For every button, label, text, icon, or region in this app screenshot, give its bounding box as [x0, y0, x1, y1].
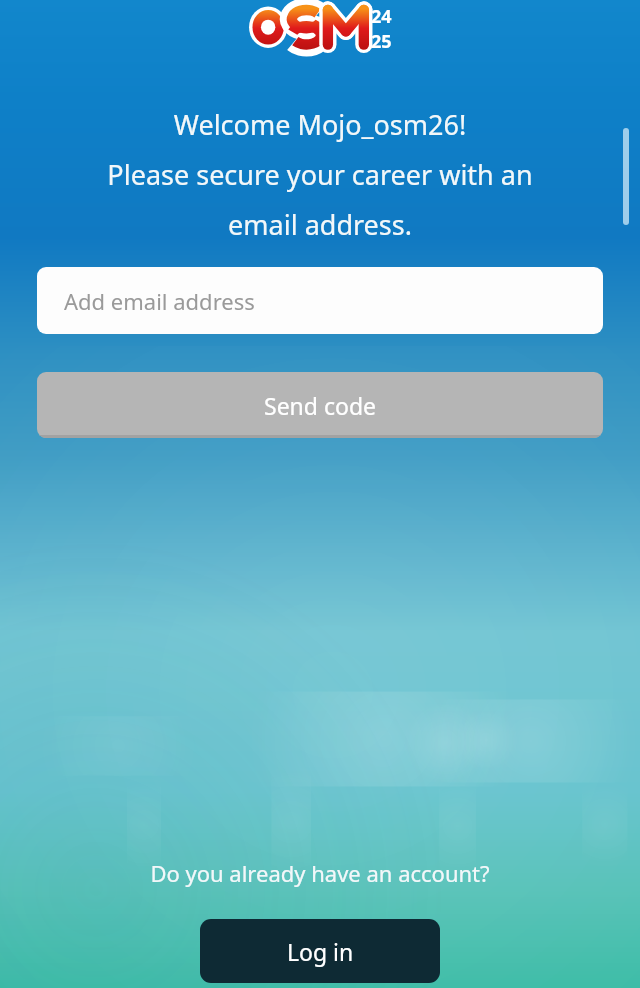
staticText: Welcome Mojo_osm26! Please secure your c…: [22, 106, 618, 243]
staticText: Send code: [264, 390, 377, 421]
button[interactable]: Send code: [37, 372, 603, 438]
staticText: 24: [371, 4, 392, 29]
staticText: 25: [371, 29, 392, 50]
staticText: Log in: [287, 936, 354, 967]
button[interactable]: Log in: [200, 919, 440, 983]
staticText: Add email address: [64, 286, 255, 316]
staticText: Do you already have an account?: [0, 858, 640, 888]
button[interactable]: Add email address: [37, 267, 603, 334]
